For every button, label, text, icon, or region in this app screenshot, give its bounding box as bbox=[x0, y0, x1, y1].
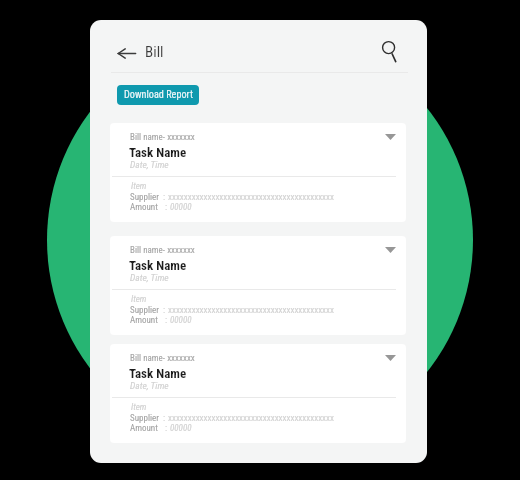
staticText: Bill bbox=[145, 43, 164, 61]
button[interactable]: Download Report bbox=[117, 85, 199, 105]
button[interactable]: Bill name- xxxxxxx bbox=[110, 344, 406, 443]
staticText: : bbox=[163, 315, 170, 326]
staticText: Amount bbox=[130, 202, 158, 213]
staticText: Item bbox=[131, 181, 147, 192]
staticText: : bbox=[161, 413, 168, 424]
staticText: Item bbox=[131, 402, 147, 413]
staticText: : bbox=[163, 202, 170, 213]
staticText: 00000 bbox=[170, 423, 192, 434]
staticText: Item bbox=[131, 294, 147, 305]
staticText: Date, Time bbox=[130, 159, 169, 170]
staticText: 00000 bbox=[170, 202, 192, 213]
button[interactable]: Expand bbox=[381, 349, 399, 367]
button[interactable]: Back bbox=[113, 43, 139, 63]
staticText: : bbox=[161, 192, 168, 203]
staticText: Supplier bbox=[130, 413, 159, 424]
staticText: Amount bbox=[130, 315, 158, 326]
staticText: Supplier bbox=[130, 192, 159, 203]
staticText: 00000 bbox=[170, 315, 192, 326]
staticText: Date, Time bbox=[130, 380, 169, 391]
button[interactable]: Bill name- xxxxxxx bbox=[110, 123, 406, 222]
staticText: Bill name- xxxxxxx bbox=[130, 353, 195, 364]
staticText: xxxxxxxxxxxxxxxxxxxxxxxxxxxxxxxxxxxxxxxx… bbox=[168, 305, 334, 316]
staticText: : bbox=[161, 305, 168, 316]
staticText: Bill name- xxxxxxx bbox=[130, 132, 195, 143]
staticText: Download Report bbox=[124, 89, 193, 101]
staticText: Bill name- xxxxxxx bbox=[130, 245, 195, 256]
staticText: Task Name bbox=[129, 258, 187, 273]
button[interactable]: Expand bbox=[381, 128, 399, 146]
staticText: Task Name bbox=[129, 366, 187, 381]
staticText: Date, Time bbox=[130, 272, 169, 283]
staticText: Amount bbox=[130, 423, 158, 434]
button[interactable]: Expand bbox=[381, 241, 399, 259]
button[interactable]: Bill name- xxxxxxx bbox=[110, 236, 406, 335]
staticText: : bbox=[163, 423, 170, 434]
button[interactable]: Search bbox=[379, 38, 401, 64]
staticText: Supplier bbox=[130, 305, 159, 316]
staticText: xxxxxxxxxxxxxxxxxxxxxxxxxxxxxxxxxxxxxxxx… bbox=[168, 192, 334, 203]
staticText: Task Name bbox=[129, 145, 187, 160]
staticText: xxxxxxxxxxxxxxxxxxxxxxxxxxxxxxxxxxxxxxxx… bbox=[168, 413, 334, 424]
